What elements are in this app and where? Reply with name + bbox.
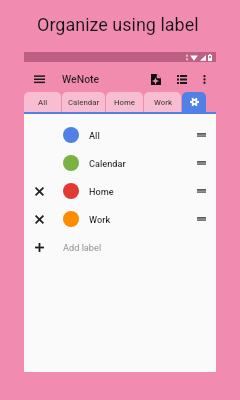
button[interactable]: Work [24,205,216,233]
button[interactable]: Work [144,92,181,112]
staticText: Work [89,214,111,225]
staticText: Home [89,186,114,197]
staticText: WeNote [62,73,100,85]
staticText: All [38,98,48,107]
button[interactable]: Calendar [24,149,216,177]
button[interactable]: Add label [24,233,216,261]
button[interactable]: Open navigation drawer [28,68,51,90]
staticText: Calendar [89,158,126,169]
button[interactable]: Settings [182,92,206,112]
button[interactable]: Home [24,177,216,205]
staticText: All [89,130,100,141]
staticText: Add label [63,242,102,253]
staticText: Home [114,98,135,107]
staticText: Organize using label [37,14,199,35]
staticText: Calendar [68,98,100,107]
button[interactable]: All [24,121,216,149]
button[interactable]: Change layout [171,69,192,90]
button[interactable]: More options [196,69,213,90]
staticText: Work [154,98,172,107]
button[interactable]: All [24,92,61,112]
button[interactable]: New note [145,68,167,91]
button[interactable]: Calendar [62,92,105,112]
button[interactable]: Home [106,92,143,112]
